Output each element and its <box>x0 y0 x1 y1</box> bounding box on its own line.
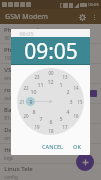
staticText: 14 <box>73 85 79 91</box>
staticText: 3 <box>69 98 73 105</box>
staticText: GSM Modem <box>5 12 48 22</box>
button[interactable]: CANCEL <box>39 141 66 152</box>
staticText: 18 <box>48 128 54 134</box>
staticText: 00 <box>48 70 54 76</box>
button[interactable]: Data <box>0 124 101 143</box>
button[interactable]: VSIM <box>0 64 101 83</box>
staticText: 23 <box>34 74 40 80</box>
staticText: 17 <box>62 124 68 130</box>
staticText: 0612 3456789 <box>4 35 35 41</box>
staticText: CANCEL <box>42 143 63 150</box>
staticText: 6 <box>49 118 53 125</box>
staticText: auto select <box>4 95 28 101</box>
button[interactable]: GSM Modem <box>5 12 48 22</box>
staticText: roaming <box>4 86 29 94</box>
button[interactable]: Phone number 2 <box>0 44 101 63</box>
staticText: 16 <box>73 113 79 119</box>
button[interactable]: roaming <box>0 84 101 103</box>
button[interactable]: Phone number <box>0 24 101 43</box>
staticText: OK <box>73 143 81 150</box>
staticText: 21 <box>19 99 25 105</box>
staticText: Data <box>4 126 18 134</box>
staticText: 03:05 <box>88 2 99 8</box>
button[interactable]: Settings <box>77 12 87 22</box>
button[interactable]: 09:05 <box>24 37 78 64</box>
button[interactable]: More options <box>90 13 98 21</box>
staticText: 15 <box>77 99 83 105</box>
staticText: 09:05 <box>19 30 34 37</box>
staticText: 2 <box>66 88 70 95</box>
staticText: Linux Tele <box>4 165 33 173</box>
staticText: enabled <box>4 75 22 81</box>
button[interactable]: History <box>0 144 101 163</box>
staticText: Band <box>4 106 19 114</box>
button[interactable]: Add <box>76 153 94 171</box>
staticText: 20 <box>23 113 29 119</box>
staticText: B1/B3/B7 <box>4 115 25 121</box>
staticText: 10 <box>30 88 37 95</box>
staticText: 12 <box>47 78 54 85</box>
staticText: VSIM <box>4 66 19 74</box>
staticText: 8 <box>32 108 36 115</box>
staticText: on <box>4 135 10 141</box>
staticText: Phone number <box>4 26 47 34</box>
staticText: Phone number 2 <box>4 46 52 54</box>
staticText: 22 <box>23 85 29 91</box>
staticText: 09:05 <box>24 37 78 64</box>
staticText: 19000 <box>4 55 18 61</box>
staticText: 4 <box>66 108 70 115</box>
staticText: config <box>4 174 18 180</box>
staticText: 19 <box>34 124 40 130</box>
staticText: logs <box>4 155 13 161</box>
staticText: 9 <box>29 98 33 105</box>
button[interactable]: Band <box>0 104 101 123</box>
button[interactable]: OK <box>70 141 84 152</box>
staticText: 5 <box>59 115 63 122</box>
staticText: 11 <box>37 81 44 88</box>
button[interactable]: Linux Tele <box>0 164 101 180</box>
staticText: 1 <box>59 81 63 88</box>
staticText: History <box>4 146 25 154</box>
staticText: 7 <box>39 115 43 122</box>
staticText: 13 <box>62 74 68 80</box>
